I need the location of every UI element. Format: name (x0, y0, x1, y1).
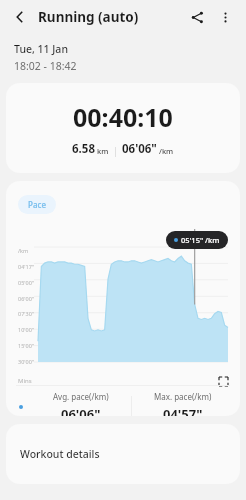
staticText: 30'00" (18, 358, 35, 365)
staticText: 15'00" (18, 342, 35, 349)
button[interactable]: 05'15" /km (166, 231, 228, 249)
staticText: 06'06" (122, 141, 157, 157)
button[interactable]: Avg. pace(/km) (30, 391, 131, 416)
button[interactable]: Workout details (6, 424, 240, 484)
staticText: 18:02 - 18:42 (14, 59, 77, 73)
staticText: 06'06" (61, 405, 101, 416)
button[interactable]: Back (8, 5, 32, 29)
staticText: 05'15" /km (181, 235, 220, 245)
staticText: Workout details (20, 447, 100, 461)
button[interactable]: Expand chart (216, 374, 230, 388)
staticText: 06'00" (18, 295, 35, 302)
staticText: 04'57" (163, 405, 203, 416)
staticText: 10'00" (18, 326, 35, 333)
button[interactable]: 00:40:10 (6, 83, 240, 173)
button[interactable]: Pace (18, 195, 56, 214)
button[interactable]: More options (212, 4, 238, 30)
staticText: Mins (18, 377, 32, 385)
staticText: Max. pace(/km) (154, 391, 212, 402)
staticText: Pace (28, 199, 46, 210)
staticText: 6.58 (72, 141, 95, 157)
button[interactable]: Max. pace(/km) (132, 391, 234, 416)
staticText: 00:40:10 (73, 100, 173, 134)
staticText: km (97, 146, 109, 156)
staticText: Avg. pace(/km) (53, 391, 109, 402)
staticText: Running (auto) (38, 8, 139, 26)
staticText: 04'17" (18, 263, 35, 270)
staticText: /km (159, 146, 174, 156)
staticText: 05'00" (18, 279, 35, 286)
staticText: 07'30" (18, 310, 35, 317)
button[interactable]: Share (184, 4, 210, 30)
staticText: Tue, 11 Jan (14, 42, 68, 56)
staticText: /km (18, 247, 29, 254)
